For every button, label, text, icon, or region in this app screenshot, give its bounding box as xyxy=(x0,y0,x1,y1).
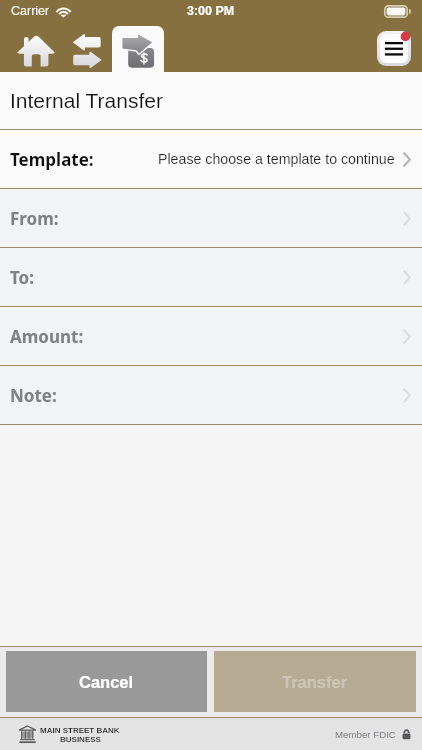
staticText: MAIN STREET BANK xyxy=(40,726,120,735)
staticText: Internal Transfer xyxy=(10,89,163,112)
button[interactable]: Menu xyxy=(371,26,416,68)
button[interactable]: Home xyxy=(8,22,64,72)
staticText: Please choose a template to continue xyxy=(158,151,395,167)
staticText: To: xyxy=(10,266,35,289)
staticText: Member FDIC xyxy=(335,729,396,740)
button[interactable]: Amount: xyxy=(0,307,422,365)
button[interactable]: Transfers xyxy=(64,22,112,72)
button[interactable]: Note: xyxy=(0,366,422,424)
staticText: Cancel xyxy=(79,673,134,691)
staticText: Note: xyxy=(10,384,57,407)
button[interactable]: Transfer xyxy=(214,651,416,712)
staticText: Carrier xyxy=(11,4,50,18)
staticText: Template: xyxy=(10,148,94,171)
staticText: Transfer xyxy=(282,673,348,691)
button[interactable]: To: xyxy=(0,248,422,306)
staticText: BUSINESS xyxy=(60,735,101,744)
staticText: Amount: xyxy=(10,325,84,348)
button[interactable]: Cancel xyxy=(6,651,207,712)
staticText: From: xyxy=(10,207,59,230)
button[interactable]: Internal Transfer xyxy=(112,26,164,72)
button[interactable]: From: xyxy=(0,189,422,247)
staticText: 3:00 PM xyxy=(187,4,235,18)
button[interactable]: Template: xyxy=(0,130,422,188)
